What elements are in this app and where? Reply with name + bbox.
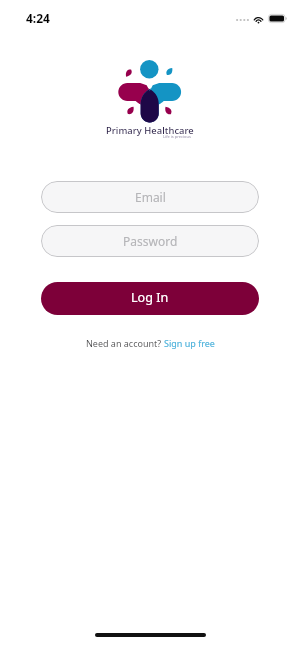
staticText: Life is precious (163, 134, 191, 139)
staticText: Password (123, 233, 178, 249)
other: Battery full (268, 14, 287, 23)
button[interactable]: Sign up free (164, 337, 215, 349)
staticText: Sign up free (164, 337, 215, 349)
button[interactable]: Email (41, 181, 259, 213)
other: Wi-Fi (253, 15, 264, 23)
other: Primary Healthcare logo (113, 58, 187, 124)
staticText: Log In (131, 289, 169, 306)
other: Cellular signal (236, 18, 248, 22)
button[interactable]: Password (41, 225, 259, 257)
staticText: Email (135, 189, 166, 205)
button[interactable]: Log In (41, 282, 259, 315)
staticText: Need an account? (86, 337, 164, 349)
staticText: 4:24 (26, 10, 50, 26)
staticText: Primary Healthcare (106, 124, 194, 137)
